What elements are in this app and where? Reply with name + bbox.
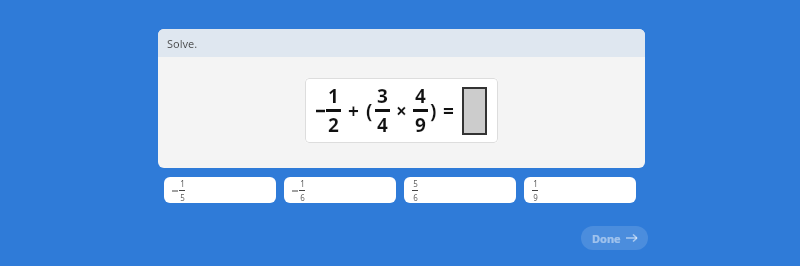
staticText: 9 [415, 112, 426, 138]
staticText: 9 [533, 192, 538, 203]
staticText: 5 [180, 192, 185, 203]
staticText: 6 [413, 192, 418, 203]
staticText: + [348, 98, 359, 124]
staticText: ( [366, 98, 373, 124]
staticText: 3 [377, 83, 388, 109]
staticText: Solve. [167, 36, 198, 51]
button[interactable]: 1 [524, 177, 636, 203]
staticText: 1 [180, 178, 185, 189]
staticText: 2 [328, 112, 339, 138]
button[interactable]: 1 [164, 177, 276, 203]
button[interactable]: Done [581, 226, 648, 250]
button[interactable]: Answer blank [462, 87, 487, 135]
button[interactable]: 5 [404, 177, 516, 203]
staticText: 1 [533, 178, 538, 189]
staticText: 4 [377, 112, 388, 138]
staticText: 5 [413, 178, 418, 189]
staticText: = [443, 98, 454, 124]
staticText: × [396, 98, 407, 124]
staticText: 4 [415, 83, 426, 109]
staticText: 1 [300, 178, 305, 189]
staticText: 6 [300, 192, 305, 203]
button[interactable]: 1 [284, 177, 396, 203]
staticText: 1 [328, 83, 339, 109]
staticText: ) [430, 98, 437, 124]
staticText: Done [592, 231, 621, 246]
